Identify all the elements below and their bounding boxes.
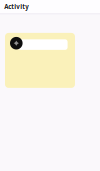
staticText: Activity — [4, 2, 29, 11]
button[interactable] — [5, 33, 75, 88]
